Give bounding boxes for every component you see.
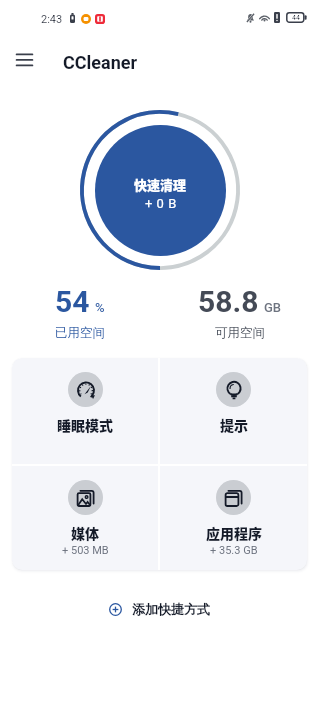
staticText: CCleaner xyxy=(63,52,138,73)
staticText: GB xyxy=(264,300,282,315)
button[interactable]: 睡眠模式 xyxy=(12,358,158,464)
button[interactable]: 提示 xyxy=(160,358,307,464)
button[interactable]: 应用程序 xyxy=(160,466,307,570)
staticText: 睡眠模式 xyxy=(57,415,113,435)
staticText: 提示 xyxy=(220,415,248,435)
staticText: 2:43 xyxy=(41,13,63,26)
staticText: 添加快捷方式 xyxy=(132,601,210,617)
button[interactable]: Open navigation menu xyxy=(8,42,41,75)
staticText: 快速清理 xyxy=(134,175,187,194)
button[interactable]: 添加快捷方式 xyxy=(101,595,218,623)
staticText: % xyxy=(95,300,105,315)
staticText: 应用程序 xyxy=(206,523,262,543)
staticText: 54 xyxy=(55,284,90,319)
staticText: + 0 B xyxy=(145,196,177,211)
staticText: 可用空间 xyxy=(215,325,265,341)
staticText: 58.8 xyxy=(198,284,259,319)
staticText: 媒体 xyxy=(71,523,99,543)
button[interactable]: 快速清理 xyxy=(95,125,226,256)
staticText: + 35.3 GB xyxy=(210,544,258,557)
button[interactable]: 媒体 xyxy=(12,466,158,570)
staticText: 已用空间 xyxy=(55,325,105,341)
staticText: 44 xyxy=(292,14,300,22)
staticText: + 503 MB xyxy=(62,544,109,557)
